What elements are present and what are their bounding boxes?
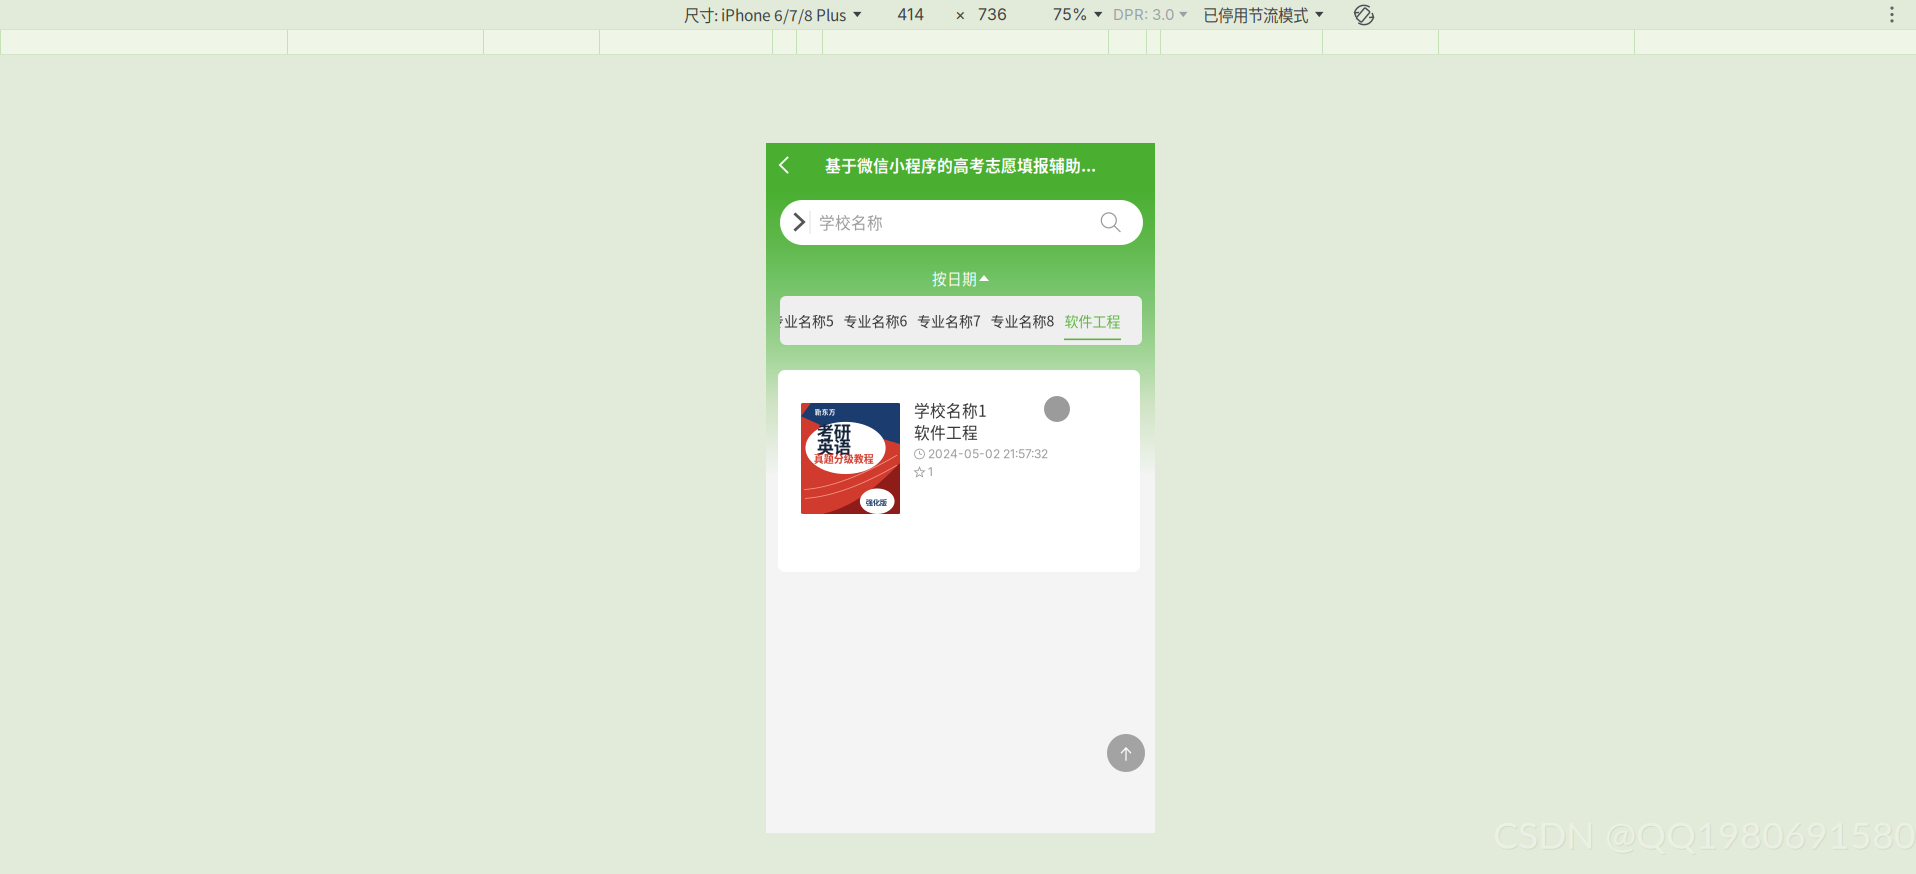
button[interactable]: 已停用节流模式 <box>1203 4 1323 25</box>
staticText: CSDN @QQ1980691580 <box>1494 813 1916 858</box>
staticText: 736 <box>978 5 1007 24</box>
staticText: 75% <box>1053 5 1088 24</box>
staticText: DPR: 3.0 <box>1113 5 1174 24</box>
staticText: 强化版 <box>866 497 887 507</box>
button[interactable]: 展开筛选 <box>792 212 806 232</box>
staticText: 考研 <box>817 418 851 444</box>
staticText: 414 <box>897 5 924 24</box>
staticText: 软件工程 <box>914 421 978 443</box>
button[interactable]: 搜索 <box>1099 211 1123 235</box>
button[interactable]: 返回顶部 <box>1107 734 1145 772</box>
staticText: 专业名称7 <box>917 310 981 331</box>
button[interactable]: 专业名称6 <box>843 296 907 345</box>
button[interactable]: 尺寸: iPhone 6/7/8 Plus <box>684 4 861 25</box>
staticText: 专业名称8 <box>990 310 1054 331</box>
staticText: 新东方 <box>815 407 836 417</box>
button[interactable]: 软件工程 <box>1064 296 1121 345</box>
button[interactable]: 更多选项 <box>1883 4 1901 25</box>
staticText: × <box>955 5 966 24</box>
staticText: 真题分级教程 <box>814 451 874 466</box>
staticText: 英语 <box>817 433 851 459</box>
button[interactable]: 专业名称7 <box>917 296 981 345</box>
button[interactable]: 专业名称5 <box>770 296 834 345</box>
button[interactable]: 专业名称8 <box>990 296 1054 345</box>
button[interactable]: 按日期 <box>932 267 989 289</box>
staticText: 学校名称1 <box>914 399 987 421</box>
button[interactable]: 返回 <box>766 143 802 187</box>
staticText: CSDN @QQ1980691580 <box>1493 812 1916 857</box>
staticText: 1 <box>928 465 933 479</box>
button[interactable]: 考研 <box>778 370 1140 572</box>
staticText: 基于微信小程序的高考志愿填报辅助... <box>825 154 1096 176</box>
staticText: 专业名称5 <box>770 310 834 331</box>
staticText: 2024-05-02 21:57:32 <box>928 447 1048 461</box>
staticText: 软件工程 <box>1064 310 1120 331</box>
staticText: 学校名称 <box>819 211 883 233</box>
button[interactable]: 旋转视口 <box>1352 3 1376 27</box>
staticText: 已停用节流模式 <box>1203 3 1308 26</box>
button[interactable]: 75% <box>1053 4 1102 25</box>
staticText: 尺寸: iPhone 6/7/8 Plus <box>684 3 846 26</box>
button[interactable]: DPR: 3.0 <box>1113 4 1187 25</box>
staticText: 专业名称6 <box>843 310 907 331</box>
staticText: 按日期 <box>932 267 977 289</box>
